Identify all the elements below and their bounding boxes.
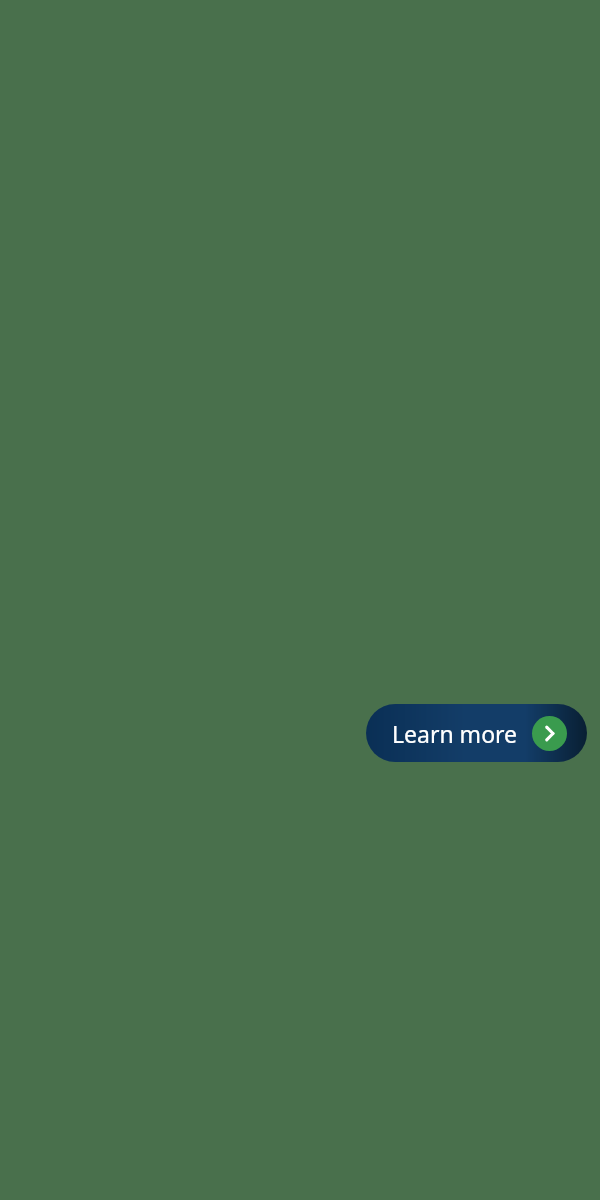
button[interactable]: Learn more	[366, 704, 587, 762]
other: Learn more	[532, 716, 567, 751]
staticText: Learn more	[392, 718, 518, 749]
